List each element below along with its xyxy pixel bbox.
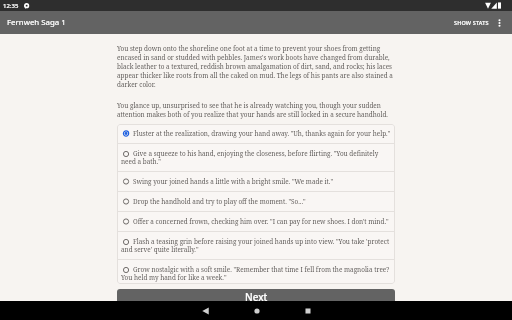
button[interactable]: Home xyxy=(231,301,282,320)
button[interactable]: Offer a concerned frown, checking him ov… xyxy=(117,212,395,231)
staticText: Give a squeeze to his hand, enjoying the… xyxy=(121,149,393,166)
staticText: Next xyxy=(245,290,268,303)
staticText: You step down onto the shoreline one foo… xyxy=(117,44,395,89)
staticText: Fernweh Saga 1 xyxy=(7,17,66,28)
staticText: Drop the handhold and try to play off th… xyxy=(121,197,393,206)
staticText: You glance up, unsurprised to see that h… xyxy=(117,101,395,119)
button[interactable]: Flash a teasing grin before raising your… xyxy=(117,232,395,259)
staticText: SHOW STATS xyxy=(454,19,489,26)
staticText: Offer a concerned frown, checking him ov… xyxy=(121,217,393,226)
button[interactable]: Grow nostalgic with a soft smile. "Remem… xyxy=(117,260,395,284)
button[interactable]: SHOW STATS xyxy=(449,13,492,32)
button[interactable]: More options xyxy=(492,11,507,34)
button[interactable]: Next xyxy=(117,289,395,311)
button[interactable]: Give a squeeze to his hand, enjoying the… xyxy=(117,144,395,171)
staticText: 12:35 xyxy=(3,2,19,10)
button[interactable]: Fluster at the realization, drawing your… xyxy=(117,124,395,143)
staticText: Grow nostalgic with a soft smile. "Remem… xyxy=(121,265,393,282)
staticText: Fluster at the realization, drawing your… xyxy=(121,129,393,138)
button[interactable]: Back xyxy=(180,301,231,320)
button[interactable]: Drop the handhold and try to play off th… xyxy=(117,192,395,211)
staticText: Swing your joined hands a little with a … xyxy=(121,177,393,186)
button[interactable]: Recent apps xyxy=(282,301,333,320)
staticText: Flash a teasing grin before raising your… xyxy=(121,237,393,254)
button[interactable]: Swing your joined hands a little with a … xyxy=(117,172,395,191)
